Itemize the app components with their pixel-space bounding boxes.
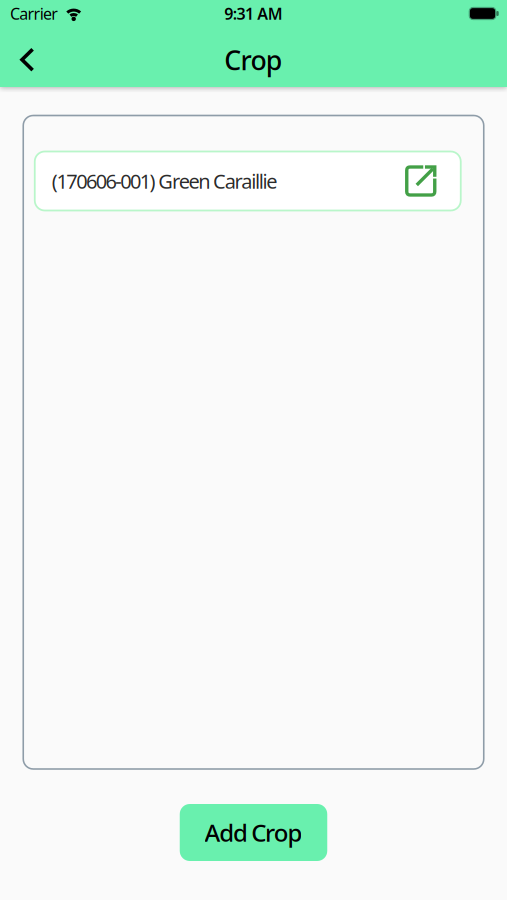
staticText: Crop — [224, 42, 283, 78]
button[interactable]: (170606-001) Green Caraillie — [35, 151, 461, 210]
button[interactable]: Add Crop — [180, 804, 327, 861]
staticText: (170606-001) Green Caraillie — [52, 168, 277, 194]
staticText: Carrier — [10, 3, 58, 24]
button[interactable]: Back — [0, 27, 53, 87]
staticText: 9:31 AM — [224, 3, 283, 24]
staticText: Add Crop — [204, 817, 302, 848]
